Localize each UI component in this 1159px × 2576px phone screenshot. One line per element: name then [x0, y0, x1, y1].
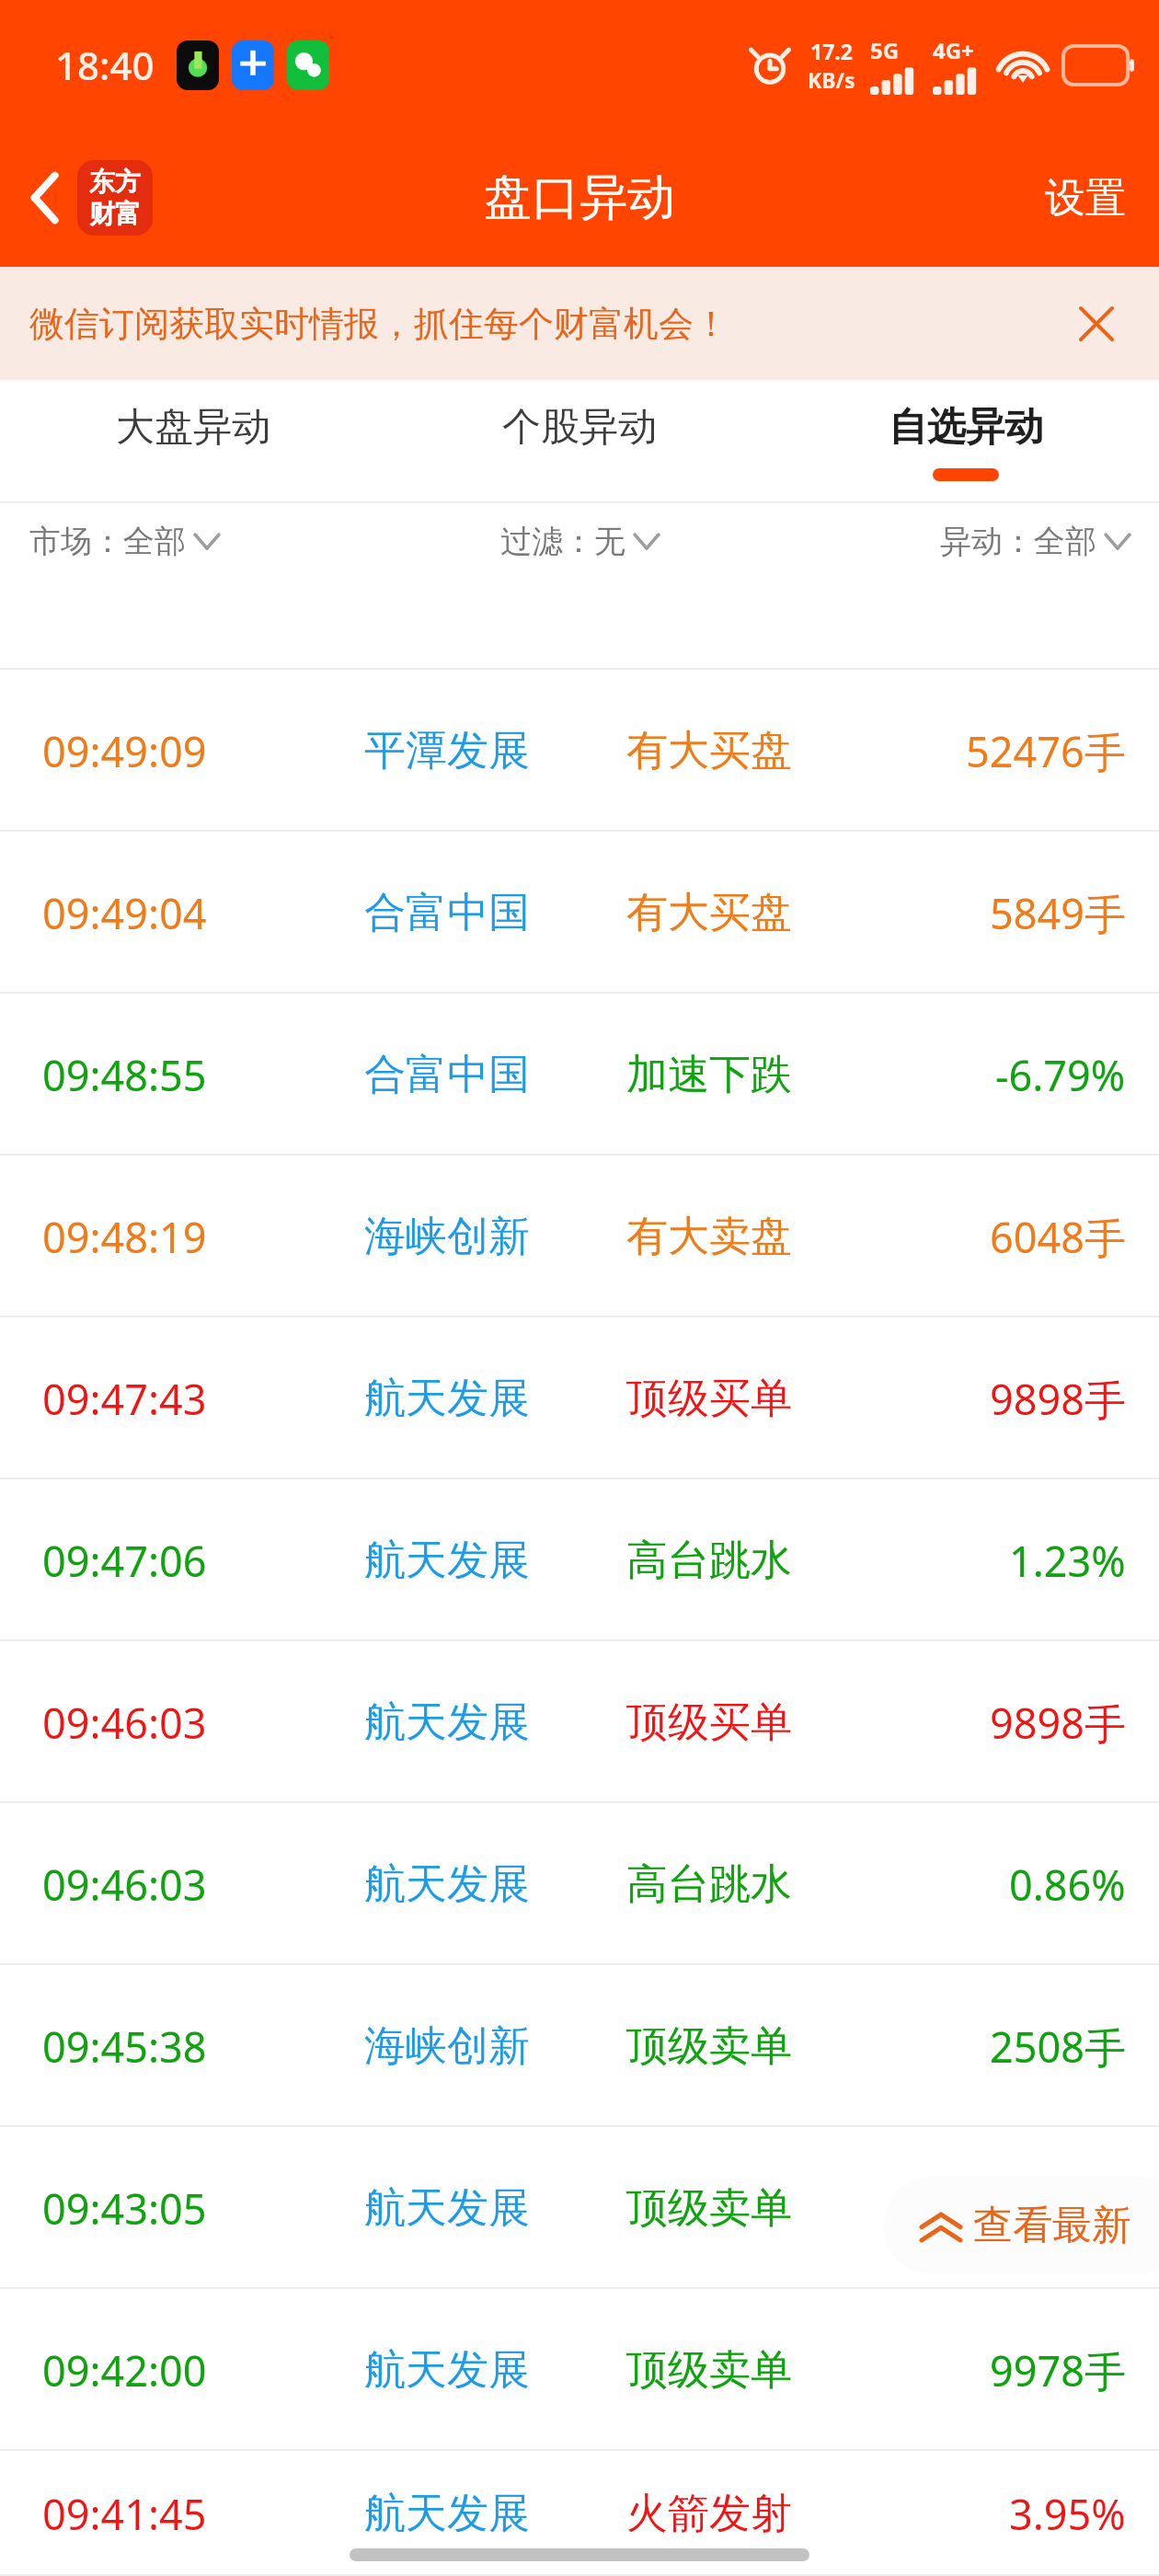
button[interactable]: 过滤：无	[500, 522, 659, 561]
staticText: 异动：全部	[940, 522, 1096, 561]
staticText: 09:48:19	[42, 1209, 207, 1265]
staticText: 9898手	[990, 1695, 1126, 1751]
staticText: 大盘异动	[116, 403, 270, 452]
staticText: 2508手	[990, 2018, 1126, 2075]
staticText: 有大买盘	[626, 725, 792, 777]
staticText: 火箭发射	[626, 2488, 792, 2540]
staticText: 09:49:04	[42, 885, 207, 941]
staticText: 09:45:38	[42, 2018, 207, 2075]
staticText: 09:41:45	[42, 2486, 207, 2542]
staticText: 9978手	[990, 2180, 1126, 2237]
staticText: 9978手	[990, 2342, 1126, 2398]
staticText: 17.2	[810, 37, 853, 65]
staticText: 09:48:55	[42, 1047, 207, 1103]
button[interactable]: 自选异动	[773, 380, 1159, 503]
staticText: 52476手	[966, 723, 1126, 779]
staticText: 顶级卖单	[626, 2344, 792, 2397]
staticText: -6.79%	[995, 1047, 1126, 1103]
button[interactable]: 09:48:55	[0, 994, 1159, 1156]
button[interactable]: Close banner	[1058, 285, 1135, 362]
button[interactable]: 查看最新	[883, 2177, 1159, 2274]
staticText: 加速下跌	[626, 1049, 792, 1101]
staticText: 航天发展	[364, 2488, 530, 2540]
staticText: 过滤：无	[500, 522, 625, 561]
staticText: 09:43:05	[42, 2180, 207, 2237]
staticText: 航天发展	[364, 1535, 530, 1587]
button[interactable]: 设置	[1017, 145, 1159, 251]
button[interactable]: 09:41:45	[0, 2451, 1159, 2576]
staticText: 财富	[89, 198, 141, 230]
staticText: 6048手	[990, 1209, 1126, 1265]
button[interactable]: 09:46:03	[0, 1803, 1159, 1965]
staticText: 09:49:09	[42, 723, 207, 779]
staticText: 航天发展	[364, 1696, 530, 1749]
button[interactable]: 09:47:06	[0, 1479, 1159, 1641]
button[interactable]: Back	[17, 145, 164, 250]
staticText: 航天发展	[364, 1373, 530, 1425]
staticText: 东方	[89, 166, 141, 198]
staticText: 高台跳水	[626, 1535, 792, 1587]
staticText: 5G	[870, 35, 900, 65]
staticText: 顶级卖单	[626, 2182, 792, 2235]
staticText: 平潭发展	[364, 725, 530, 777]
button[interactable]: 09:47:43	[0, 1317, 1159, 1479]
staticText: 9898手	[990, 1371, 1126, 1427]
staticText: 设置	[1045, 173, 1126, 224]
staticText: 顶级卖单	[626, 2020, 792, 2073]
button[interactable]: 09:43:05	[0, 2127, 1159, 2289]
button[interactable]: 大盘异动	[0, 380, 386, 503]
staticText: KB/s	[808, 65, 855, 94]
staticText: 09:46:03	[42, 1857, 207, 1913]
button[interactable]: 09:42:00	[0, 2289, 1159, 2451]
button[interactable]: 09:49:04	[0, 832, 1159, 994]
staticText: 4G+	[933, 35, 974, 65]
staticText: 海峡创新	[364, 1211, 530, 1263]
button[interactable]: 微信订阅获取实时情报，抓住每个财富机会！	[0, 267, 1159, 380]
staticText: 查看最新	[973, 2201, 1131, 2250]
staticText: 有大卖盘	[626, 1211, 792, 1263]
staticText: 09:46:03	[42, 1695, 207, 1751]
staticText: 顶级买单	[626, 1696, 792, 1749]
staticText: 高台跳水	[626, 1858, 792, 1911]
staticText: 海峡创新	[364, 2020, 530, 2073]
staticText: 顶级买单	[626, 1373, 792, 1425]
staticText: 市场：全部	[29, 522, 186, 561]
staticText: 5849手	[990, 885, 1126, 941]
staticText: 09:47:06	[42, 1533, 207, 1589]
staticText: 盘口异动	[484, 167, 675, 228]
staticText: 18:40	[55, 39, 155, 91]
staticText: 航天发展	[364, 1858, 530, 1911]
staticText: 合富中国	[364, 1049, 530, 1101]
staticText: 航天发展	[364, 2344, 530, 2397]
staticText: 自选异动	[889, 403, 1043, 452]
staticText: 航天发展	[364, 2182, 530, 2235]
button[interactable]: 09:46:03	[0, 1641, 1159, 1803]
button[interactable]: 09:45:38	[0, 1965, 1159, 2127]
button[interactable]: 09:48:19	[0, 1156, 1159, 1317]
staticText: 0.86%	[1009, 1857, 1126, 1913]
staticText: 微信订阅获取实时情报，抓住每个财富机会！	[29, 302, 729, 346]
button[interactable]: 09:49:09	[0, 670, 1159, 832]
staticText: 有大买盘	[626, 887, 792, 939]
staticText: 3.95%	[1009, 2486, 1126, 2542]
staticText: 合富中国	[364, 887, 530, 939]
staticText: 1.23%	[1009, 1533, 1126, 1589]
button[interactable]: 市场：全部	[0, 522, 219, 561]
staticText: 个股异动	[502, 403, 657, 452]
button[interactable]: 异动：全部	[940, 522, 1159, 561]
button[interactable]: 个股异动	[386, 380, 773, 503]
staticText: 09:42:00	[42, 2342, 207, 2398]
staticText: 09:47:43	[42, 1371, 207, 1427]
